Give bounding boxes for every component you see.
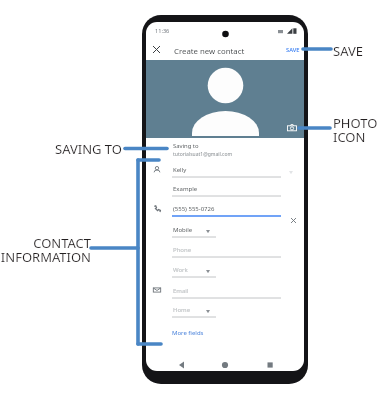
staticText: Work [173,266,188,274]
staticText: CONTACT INFORMATION [0,234,91,265]
staticText: SAVE [286,46,300,54]
staticText: Example [173,185,198,193]
button[interactable]: SAVE [286,46,300,54]
staticText: SAVING TO [55,140,122,158]
staticText: PHOTO ICON [333,114,378,145]
staticText: More fields [172,329,204,337]
button[interactable]: Close [148,41,164,57]
staticText: 11:36 [155,27,170,35]
button[interactable]: Change photo [286,122,298,134]
staticText: (555) 555-0726 [173,205,215,213]
staticText: Mobile [173,226,193,234]
staticText: Phone [173,246,192,254]
button[interactable]: Clear phone number [288,215,298,225]
staticText: Saving to [173,142,199,150]
staticText: tutorialsuat1@gmail.com [173,151,233,158]
staticText: Create new contact [174,46,245,57]
button[interactable]: More fields [172,329,204,337]
staticText: SAVE [333,42,363,60]
staticText: Home [173,306,191,314]
staticText: Kelly [173,166,187,174]
staticText: Email [173,287,189,295]
